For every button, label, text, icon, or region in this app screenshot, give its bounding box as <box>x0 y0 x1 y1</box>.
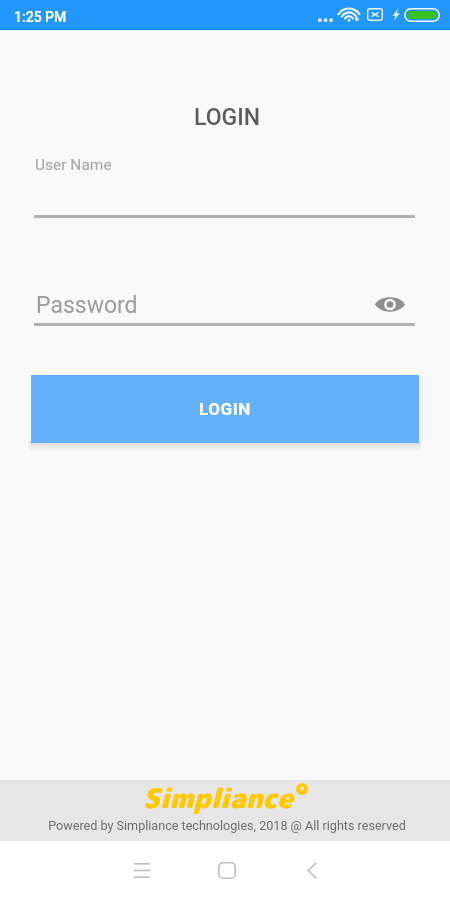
button[interactable]: LOGIN <box>31 375 419 443</box>
button[interactable]: User Name <box>35 156 112 174</box>
staticText: 1:25 PM <box>14 9 67 25</box>
staticText: Powered by Simpliance technologies, 2018… <box>2 818 450 833</box>
button[interactable]: Home <box>202 846 251 895</box>
staticText: Simpliance <box>143 779 293 817</box>
button[interactable]: Back <box>287 846 336 895</box>
button[interactable]: Show password <box>374 289 406 319</box>
button[interactable]: Password <box>36 292 138 319</box>
staticText: LOGIN <box>199 399 251 419</box>
staticText: LOGIN <box>2 104 450 131</box>
button[interactable]: Recent apps <box>117 846 166 895</box>
